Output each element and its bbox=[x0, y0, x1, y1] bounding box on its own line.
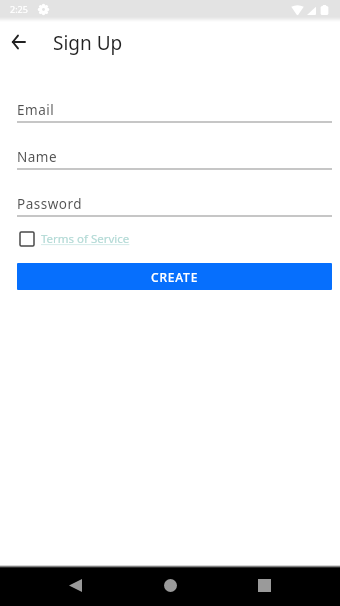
staticText: Password bbox=[17, 195, 83, 213]
button[interactable]: CREATE bbox=[17, 263, 332, 290]
button[interactable]: Terms of Service bbox=[16, 230, 130, 248]
button[interactable]: Recent apps bbox=[241, 566, 287, 604]
staticText: Sign Up bbox=[53, 30, 123, 56]
button[interactable]: Home bbox=[147, 566, 193, 604]
button[interactable]: Password bbox=[17, 189, 332, 217]
button[interactable]: Email bbox=[17, 95, 332, 123]
staticText: Terms of Service bbox=[41, 231, 130, 247]
staticText: CREATE bbox=[151, 269, 199, 285]
staticText: Name bbox=[17, 148, 58, 166]
button[interactable]: Navigate up bbox=[2, 26, 34, 58]
staticText: Email bbox=[17, 101, 55, 119]
button[interactable]: Back bbox=[52, 566, 98, 604]
button[interactable]: Name bbox=[17, 142, 332, 170]
staticText: 2:25 bbox=[10, 3, 28, 15]
